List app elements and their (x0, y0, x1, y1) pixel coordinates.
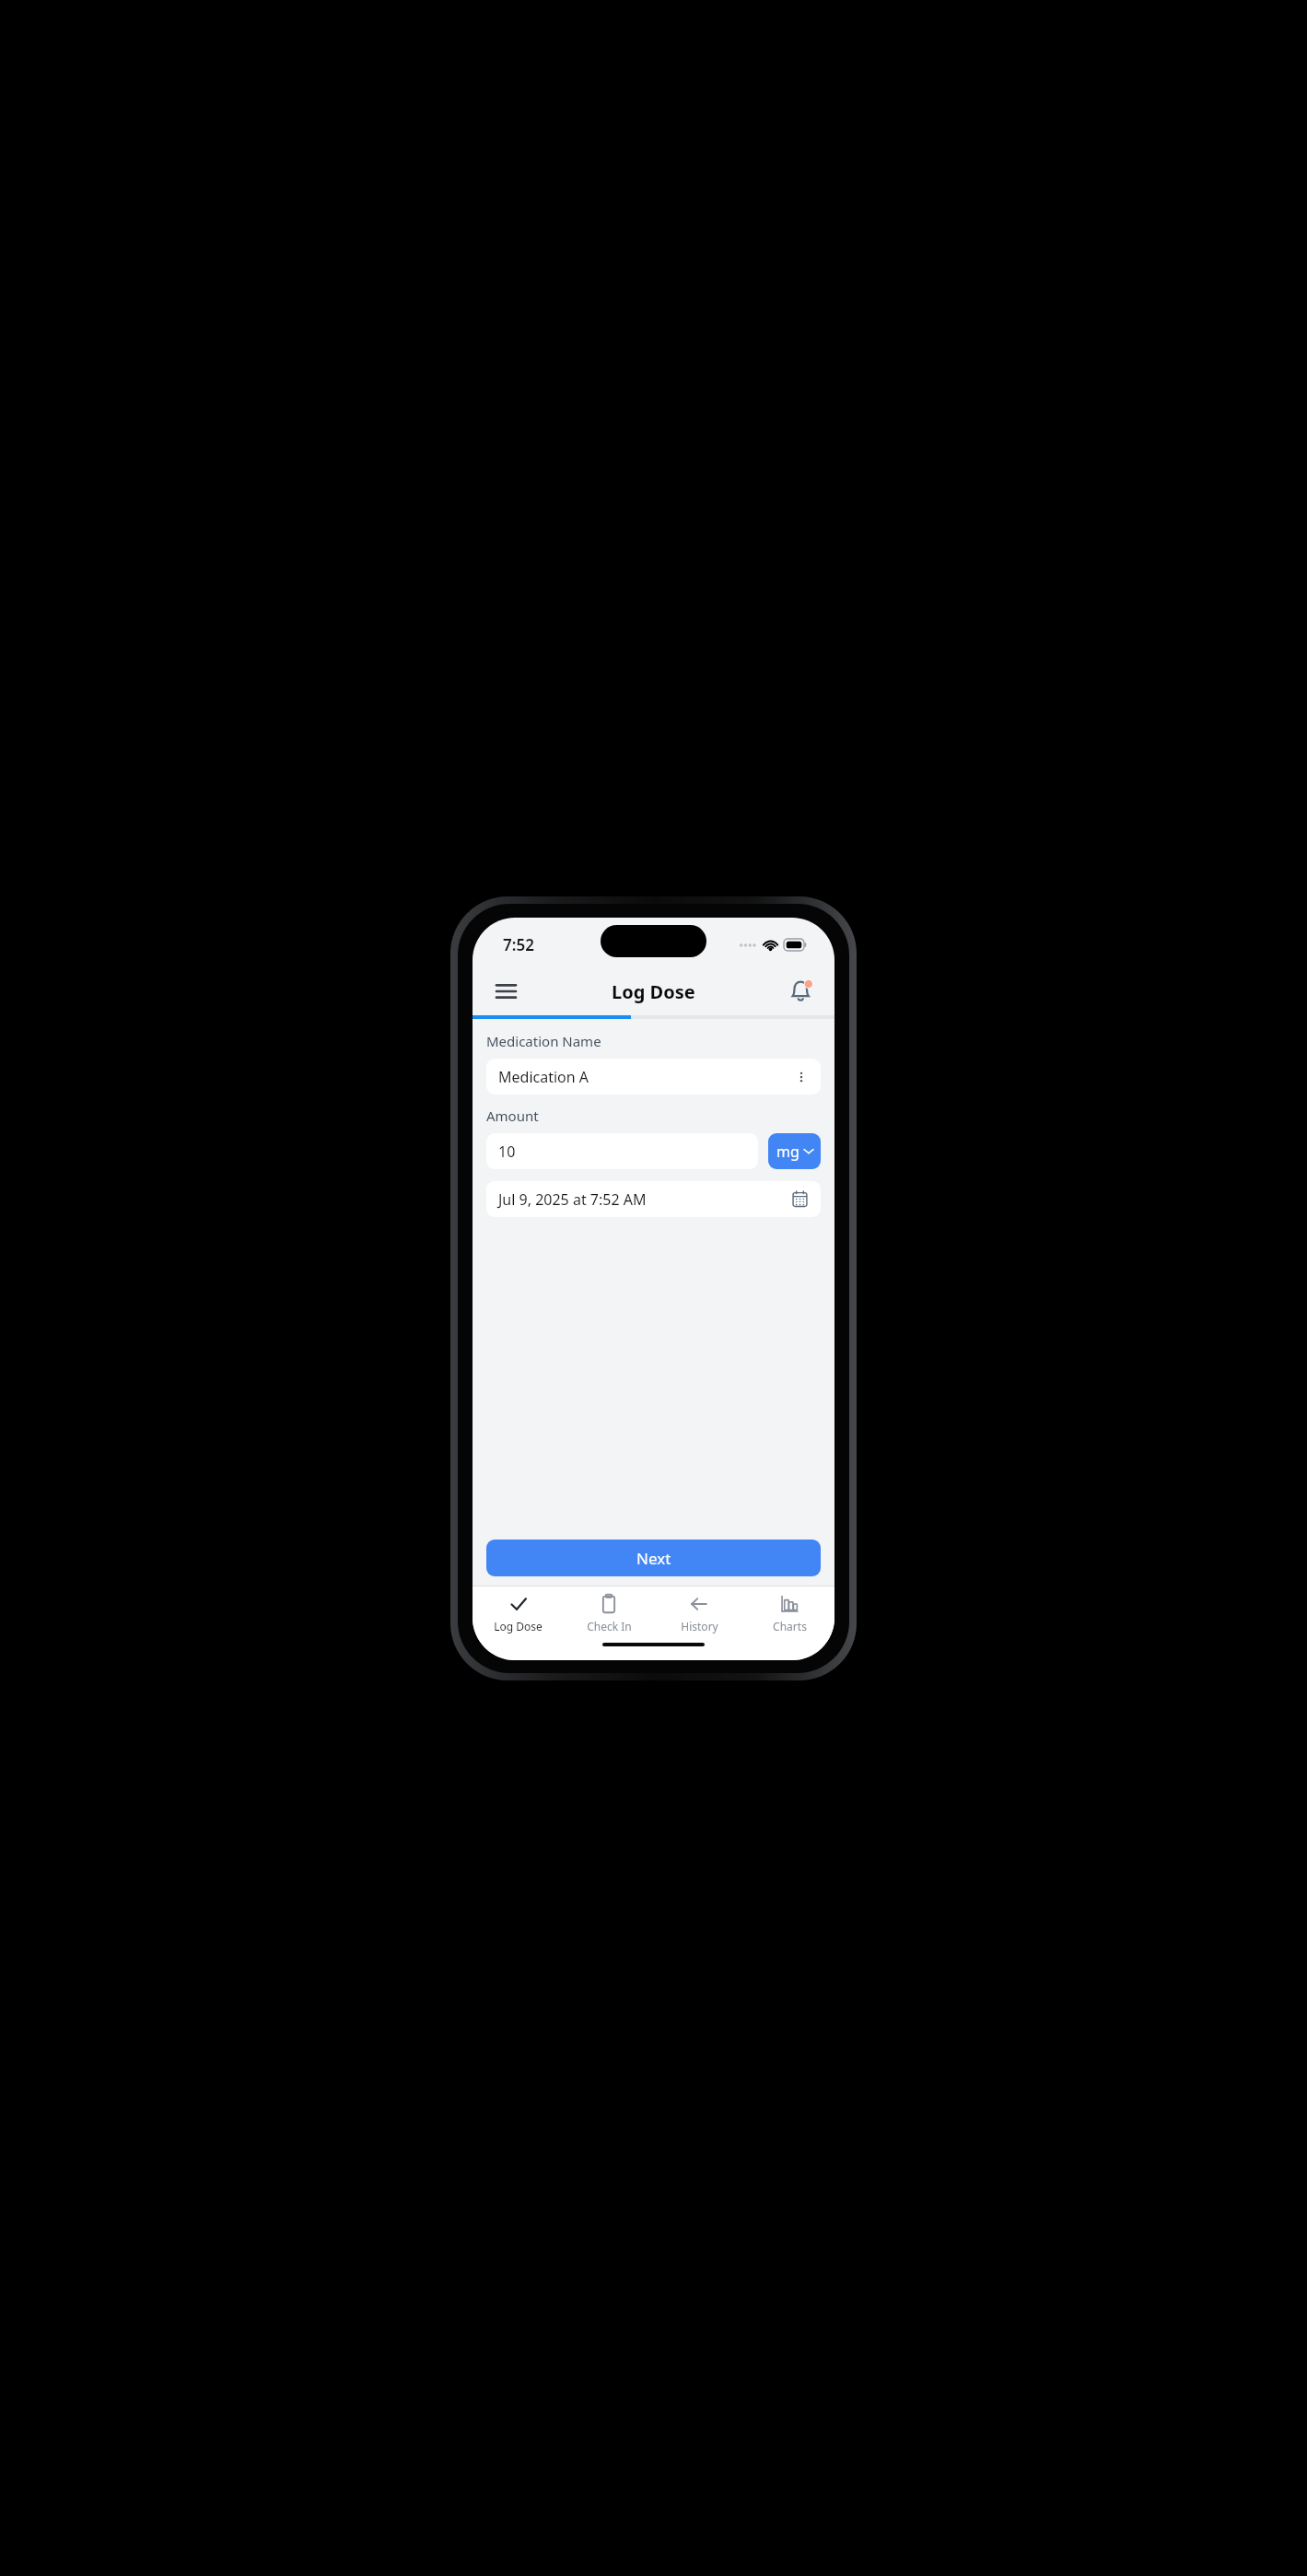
staticText: mg (776, 1142, 799, 1162)
button[interactable]: Menu (485, 971, 526, 1012)
button[interactable]: Next (486, 1540, 821, 1576)
staticText: Charts (773, 1619, 807, 1633)
button[interactable]: mg (768, 1133, 821, 1169)
staticText: 10 (498, 1142, 516, 1162)
staticText: Log Dose (494, 1619, 543, 1633)
button[interactable]: Jul 9, 2025 at 7:52 AM (486, 1181, 821, 1217)
staticText: Amount (486, 1107, 539, 1125)
button[interactable]: Log Dose (473, 1587, 564, 1640)
staticText: Jul 9, 2025 at 7:52 AM (498, 1189, 791, 1210)
staticText: Next (636, 1548, 671, 1569)
button[interactable]: Charts (744, 1587, 834, 1640)
staticText: 7:52 (503, 934, 534, 955)
staticText: Medication A (498, 1067, 794, 1087)
button[interactable]: Check In (564, 1587, 654, 1640)
button[interactable]: History (654, 1587, 744, 1640)
button[interactable]: 10 (486, 1133, 758, 1169)
staticText: Log Dose (612, 979, 695, 1004)
button[interactable]: Medication A (486, 1059, 821, 1095)
staticText: Check In (587, 1619, 632, 1633)
staticText: History (681, 1619, 718, 1633)
staticText: Medication Name (486, 1032, 601, 1050)
button[interactable]: Notifications (781, 971, 822, 1012)
